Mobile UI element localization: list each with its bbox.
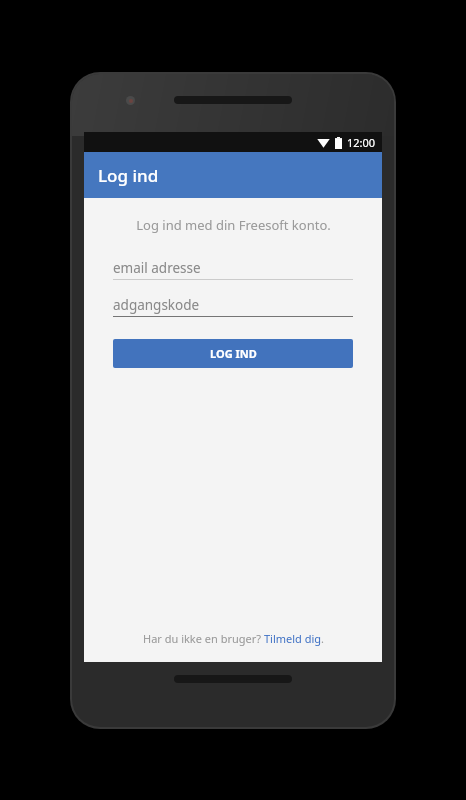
staticText: Har du ikke en bruger? Tilmeld dig. (143, 631, 324, 646)
staticText: Log ind (98, 164, 159, 187)
staticText: email adresse (113, 259, 201, 277)
staticText: LOG IND (210, 346, 257, 361)
staticText: Log ind med din Freesoft konto. (136, 216, 331, 234)
button[interactable]: email adresse (113, 256, 353, 280)
button[interactable]: LOG IND (113, 339, 353, 368)
button[interactable]: adgangskode (113, 293, 353, 317)
button[interactable]: Har du ikke en bruger? Tilmeld dig. (84, 631, 382, 646)
staticText: 12:00 (347, 135, 376, 150)
staticText: adgangskode (113, 296, 200, 314)
